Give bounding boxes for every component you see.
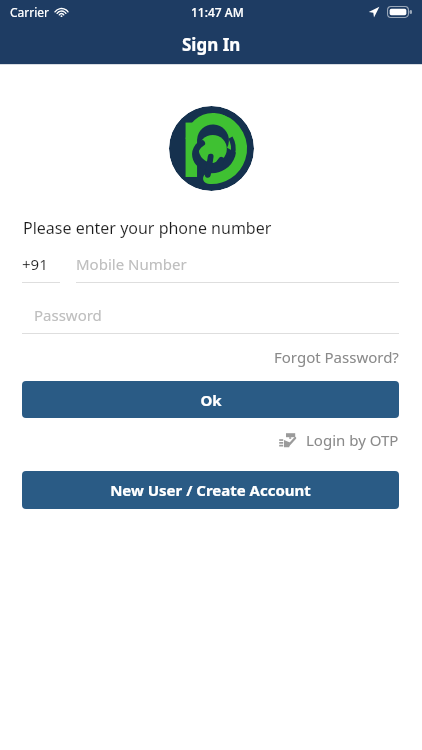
other: Wi-Fi — [55, 6, 68, 19]
button[interactable]: Ok — [22, 381, 399, 418]
button[interactable]: Password — [22, 304, 399, 334]
staticText: Password — [34, 305, 102, 325]
other: Login by OTP — [278, 430, 298, 450]
button[interactable]: Forgot Password? — [274, 347, 399, 367]
button[interactable]: Mobile Number — [76, 253, 399, 283]
staticText: Sign In — [182, 33, 241, 56]
button[interactable]: Login by OTP — [278, 430, 399, 450]
staticText: Carrier — [10, 4, 50, 20]
staticText: New User / Create Account — [110, 480, 311, 500]
staticText: Forgot Password? — [274, 347, 399, 367]
button[interactable]: New User / Create Account — [22, 471, 399, 509]
other: Location — [368, 6, 380, 18]
staticText: Mobile Number — [76, 254, 187, 274]
staticText: Login by OTP — [306, 430, 399, 450]
staticText: +91 — [22, 254, 48, 274]
staticText: 11:47 AM — [191, 4, 244, 20]
staticText: Please enter your phone number — [23, 217, 272, 239]
staticText: Ok — [200, 390, 222, 410]
